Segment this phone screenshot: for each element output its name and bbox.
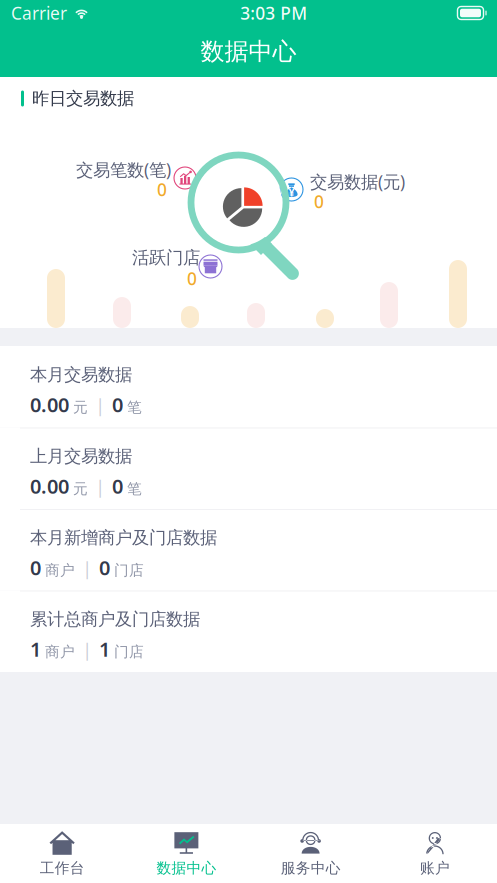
- staticText: 元: [73, 480, 88, 498]
- staticText: 活跃门店: [132, 247, 200, 268]
- staticText: 笔: [127, 398, 142, 416]
- staticText: 工作台: [40, 859, 85, 877]
- staticText: ¥: [288, 185, 294, 199]
- staticText: |: [82, 637, 92, 662]
- staticText: 门店: [114, 561, 144, 579]
- staticText: 账户: [420, 859, 450, 877]
- button[interactable]: 上月交易数据: [0, 427, 497, 509]
- staticText: 0.00: [30, 473, 69, 499]
- staticText: Carrier: [11, 1, 67, 24]
- staticText: |: [95, 474, 105, 499]
- staticText: 商户: [45, 561, 75, 579]
- staticText: 数据中心: [156, 859, 216, 877]
- button[interactable]: 工作台: [0, 824, 124, 883]
- button[interactable]: 账户: [373, 824, 497, 883]
- button[interactable]: 服务中心: [248, 824, 373, 883]
- staticText: 元: [73, 398, 88, 416]
- staticText: 昨日交易数据: [32, 88, 134, 109]
- staticText: 0: [314, 190, 324, 213]
- button[interactable]: 本月新增商户及门店数据: [0, 509, 497, 590]
- staticText: 累计总商户及门店数据: [30, 608, 200, 630]
- staticText: 商户: [45, 643, 75, 661]
- button[interactable]: 数据中心: [124, 824, 248, 883]
- button[interactable]: 本月交易数据: [0, 346, 497, 427]
- staticText: 交易数据(元): [310, 170, 405, 193]
- staticText: 本月新增商户及门店数据: [30, 527, 217, 548]
- staticText: 1: [30, 636, 41, 662]
- staticText: 数据中心: [200, 37, 296, 66]
- staticText: 0: [157, 178, 167, 201]
- staticText: 服务中心: [281, 859, 341, 877]
- staticText: |: [82, 556, 92, 580]
- staticText: 笔: [127, 480, 142, 498]
- staticText: |: [95, 393, 105, 417]
- staticText: 0: [112, 391, 123, 418]
- staticText: 0: [99, 554, 110, 581]
- staticText: 本月交易数据: [30, 364, 132, 385]
- staticText: 0.00: [30, 391, 69, 418]
- button[interactable]: 数据中心: [0, 26, 497, 77]
- staticText: 0: [187, 267, 197, 290]
- staticText: 3:03 PM: [240, 1, 307, 24]
- button[interactable]: 累计总商户及门店数据: [0, 590, 497, 672]
- staticText: 交易笔数(笔): [76, 158, 171, 181]
- staticText: 门店: [114, 643, 144, 661]
- staticText: 上月交易数据: [30, 445, 132, 467]
- staticText: 1: [99, 636, 110, 662]
- staticText: 0: [112, 473, 123, 499]
- staticText: 0: [30, 554, 41, 581]
